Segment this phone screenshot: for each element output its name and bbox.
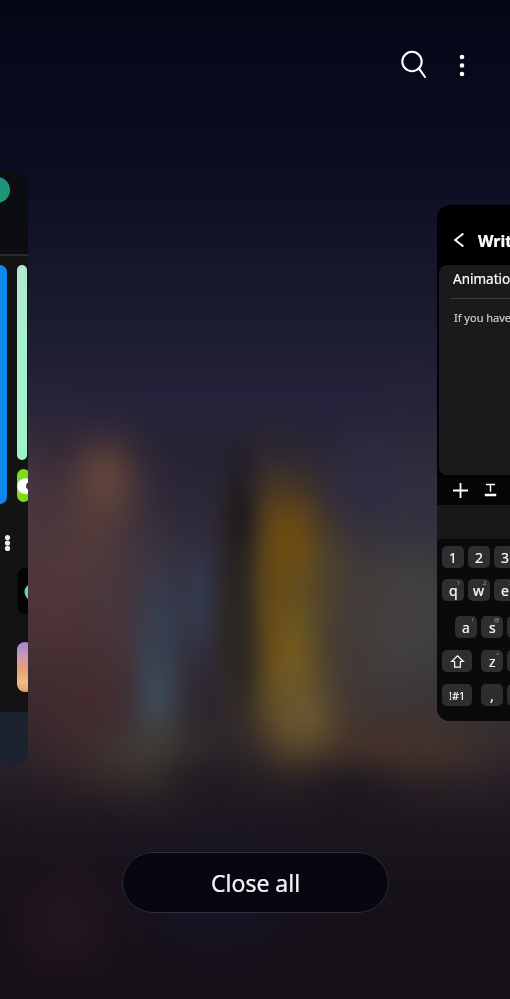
- button[interactable]: [507, 684, 510, 706]
- button[interactable]: More options: [438, 38, 486, 86]
- button[interactable]: 3: [494, 546, 510, 568]
- staticText: 1: [449, 548, 458, 567]
- button[interactable]: [442, 650, 472, 672]
- staticText: 1: [457, 579, 461, 587]
- button[interactable]: 1: [442, 546, 464, 568]
- button[interactable]: Text format: [477, 477, 503, 503]
- button[interactable]: ,: [481, 684, 503, 706]
- staticText: e: [501, 581, 509, 600]
- staticText: !#1: [449, 688, 466, 703]
- staticText: @: [494, 616, 500, 624]
- button[interactable]: Close all: [122, 852, 389, 913]
- button[interactable]: Search: [388, 38, 436, 86]
- button[interactable]: 2: [468, 546, 490, 568]
- staticText: ^: [496, 650, 500, 658]
- button[interactable]: d: [507, 616, 510, 638]
- button[interactable]: x: [507, 650, 510, 672]
- staticText: 2: [483, 579, 487, 587]
- button[interactable]: s: [481, 616, 503, 638]
- staticText: 3: [509, 579, 510, 587]
- button[interactable]: a: [455, 616, 477, 638]
- button[interactable]: e: [494, 579, 510, 601]
- staticText: q: [449, 581, 458, 600]
- staticText: Close all: [211, 867, 301, 898]
- button[interactable]: Add: [447, 477, 473, 503]
- button[interactable]: [0, 171, 28, 766]
- staticText: w: [473, 581, 485, 600]
- staticText: !: [472, 616, 474, 624]
- staticText: z: [489, 652, 496, 671]
- button[interactable]: !#1: [442, 684, 472, 706]
- button[interactable]: Writer: [437, 205, 510, 721]
- button[interactable]: w: [468, 579, 490, 601]
- staticText: s: [489, 618, 496, 637]
- staticText: If you have: [454, 310, 510, 325]
- staticText: 3: [501, 548, 510, 567]
- staticText: 2: [475, 548, 484, 567]
- staticText: Writer: [478, 230, 510, 252]
- button[interactable]: z: [481, 650, 503, 672]
- staticText: a: [462, 618, 470, 637]
- button[interactable]: q: [442, 579, 464, 601]
- staticText: Animation: [453, 270, 510, 288]
- staticText: ,: [490, 686, 494, 705]
